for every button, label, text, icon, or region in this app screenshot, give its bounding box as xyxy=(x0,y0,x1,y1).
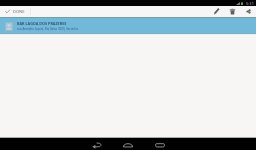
button[interactable]: Back xyxy=(92,138,102,150)
button[interactable]: Recents xyxy=(154,138,164,150)
button[interactable]: Home xyxy=(123,138,133,150)
staticText: BAR LAGOA DOS PRAZERES xyxy=(17,21,67,26)
staticText: 5:31 xyxy=(246,1,254,6)
button[interactable]: Delete xyxy=(224,6,240,17)
button[interactable]: Share xyxy=(240,6,256,17)
button[interactable]: DONE xyxy=(5,6,25,17)
staticText: DONE xyxy=(13,9,25,14)
button[interactable]: BAR LAGOA DOS PRAZERES xyxy=(0,17,256,34)
button[interactable]: Edit xyxy=(208,6,224,17)
staticText: rua Amadeu Lupini, Rio Salso 3205, Serri… xyxy=(17,27,78,31)
